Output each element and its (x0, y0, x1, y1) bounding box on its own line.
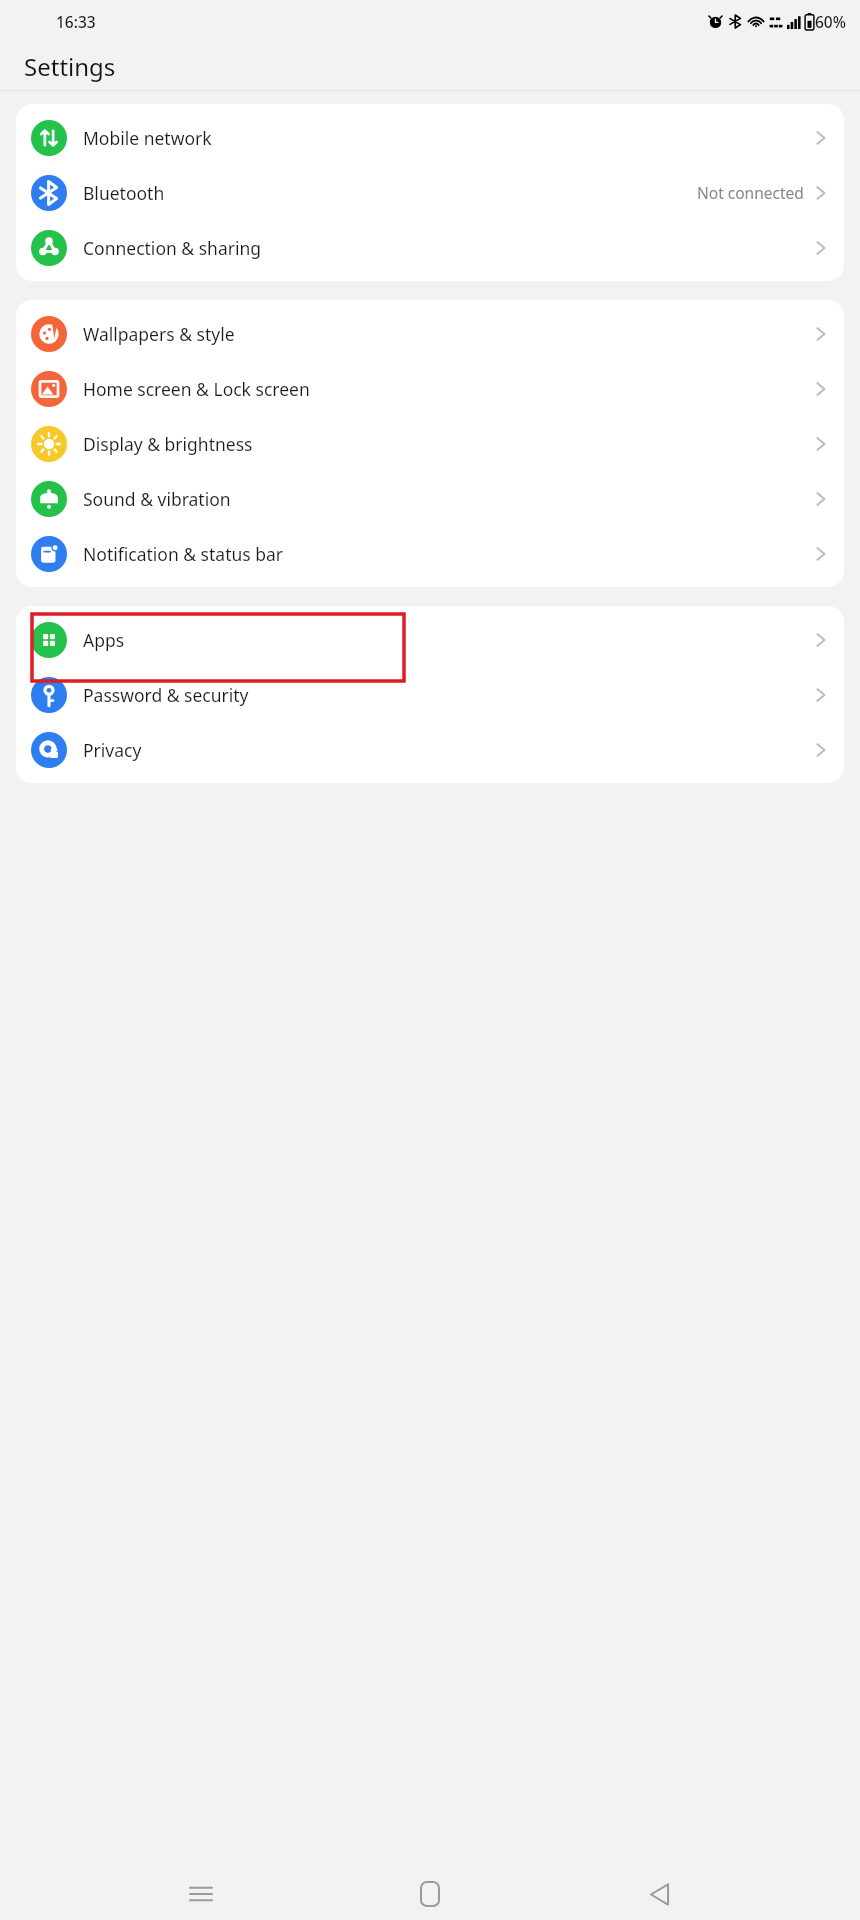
button[interactable]: Apps (16, 612, 844, 667)
staticText: Mobile network (83, 126, 212, 150)
staticText: Wallpapers & style (83, 322, 235, 346)
staticText: Password & security (83, 683, 249, 707)
staticText: Display & brightness (83, 432, 253, 456)
staticText: Apps (83, 628, 125, 652)
button[interactable]: Wallpapers & style (16, 306, 844, 361)
staticText: 60% (815, 11, 846, 32)
staticText: Bluetooth (83, 181, 165, 205)
button[interactable]: Password & security (16, 667, 844, 722)
staticText: Privacy (83, 738, 142, 762)
button[interactable]: Display & brightness (16, 416, 844, 471)
button[interactable]: Back (631, 1868, 687, 1920)
button[interactable]: Connection & sharing (16, 220, 844, 275)
staticText: Settings (24, 50, 116, 83)
button[interactable]: Privacy (16, 722, 844, 777)
staticText: Home screen & Lock screen (83, 377, 310, 401)
staticText: 16:33 (56, 11, 96, 32)
button[interactable]: Home (402, 1868, 458, 1920)
button[interactable]: Bluetooth (16, 165, 844, 220)
staticText: Connection & sharing (83, 236, 262, 260)
staticText: Notification & status bar (83, 542, 284, 566)
button[interactable]: Sound & vibration (16, 471, 844, 526)
button[interactable]: Mobile network (16, 110, 844, 165)
button[interactable]: Recent apps (173, 1868, 229, 1920)
staticText: Not connected (697, 182, 804, 203)
button[interactable]: Notification & status bar (16, 526, 844, 581)
button[interactable]: Home screen & Lock screen (16, 361, 844, 416)
staticText: Sound & vibration (83, 487, 231, 511)
